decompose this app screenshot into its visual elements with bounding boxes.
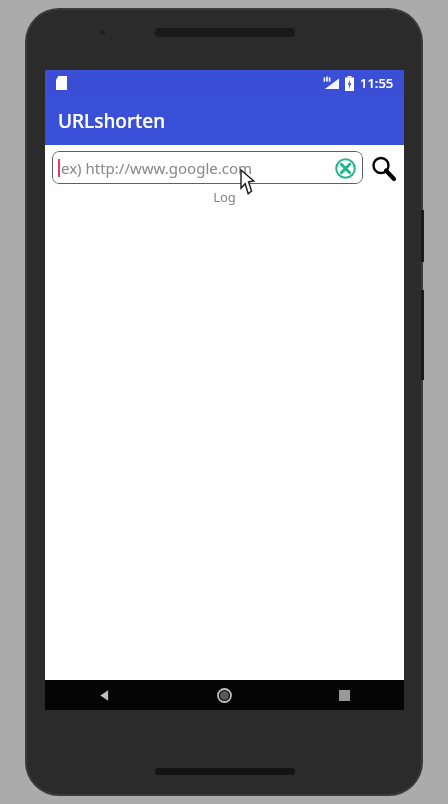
staticText: URLshorten xyxy=(58,108,166,134)
button[interactable]: Log xyxy=(45,188,404,206)
button[interactable]: Recent apps xyxy=(284,680,404,710)
button[interactable]: Back xyxy=(45,680,164,710)
button[interactable]: Clear text xyxy=(333,156,357,180)
button[interactable]: Home xyxy=(164,680,284,710)
staticText: ex) http://www.google.com xyxy=(61,158,253,178)
button[interactable]: ex) http://www.google.com xyxy=(52,151,363,184)
button[interactable]: Search xyxy=(368,153,398,183)
staticText: 11:55 xyxy=(360,74,394,92)
